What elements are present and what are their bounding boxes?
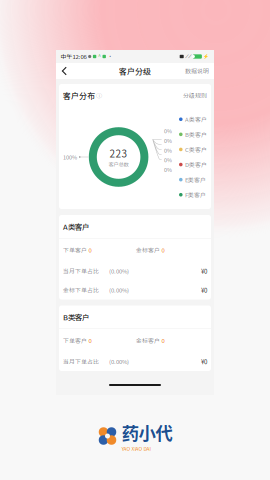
staticText: 当月下单占比 <box>63 267 99 275</box>
staticText: 金标客户 <box>136 246 160 254</box>
staticText: 100% <box>63 153 77 161</box>
staticText: 0 <box>89 336 92 345</box>
staticText: 0 <box>162 246 165 254</box>
button[interactable]: 数据说明 <box>182 65 212 77</box>
staticText: 客户总数 <box>109 160 129 168</box>
staticText: ⓘ <box>95 91 102 100</box>
button[interactable]: 返回 <box>58 64 72 78</box>
staticText: ⟋⟋ <box>185 54 191 59</box>
staticText: 0% <box>164 166 172 174</box>
staticText: ⚡ <box>203 54 209 59</box>
staticText: C类客户 <box>185 145 207 154</box>
staticText: 0% <box>164 137 172 144</box>
staticText: 223 <box>110 146 128 160</box>
staticText: ¥0 <box>201 357 207 366</box>
staticText: YAO XIAO DAI <box>121 445 150 452</box>
staticText: A类客户 <box>63 221 89 232</box>
staticText: · <box>107 53 112 60</box>
staticText: (0.00%) <box>109 286 129 294</box>
staticText: 金标下单占比 <box>63 286 99 294</box>
staticText: 客户分级 <box>119 65 151 77</box>
staticText: 0% <box>164 146 172 154</box>
staticText: 0 <box>162 336 165 345</box>
staticText: E类客户 <box>185 175 206 184</box>
staticText: F类客户 <box>185 190 206 199</box>
staticText: (0.00%) <box>109 357 129 366</box>
staticText: 0% <box>164 156 172 164</box>
staticText: 0% <box>164 127 172 135</box>
staticText: ¥0 <box>201 286 207 294</box>
staticText: 0 <box>89 246 92 254</box>
staticText: 下单客户 <box>63 336 87 345</box>
staticText: 药小代 <box>121 420 172 445</box>
staticText: ^ <box>98 53 101 60</box>
staticText: 客户分布 <box>63 90 95 101</box>
staticText: 当月下单占比 <box>63 357 99 366</box>
staticText: 数据说明 <box>185 67 209 75</box>
staticText: D类客户 <box>185 160 207 169</box>
staticText: 金标客户 <box>136 336 160 345</box>
staticText: B类客户 <box>185 130 207 139</box>
staticText: A类客户 <box>185 115 207 123</box>
staticText: B类客户 <box>63 312 89 322</box>
staticText: 分级规则 <box>183 91 207 100</box>
staticText: 下单客户 <box>63 246 87 254</box>
staticText: ¥0 <box>201 267 207 275</box>
staticText: (0.00%) <box>109 267 129 275</box>
button[interactable]: 分级规则 <box>183 91 207 100</box>
staticText: 中午12:06 <box>60 52 86 61</box>
